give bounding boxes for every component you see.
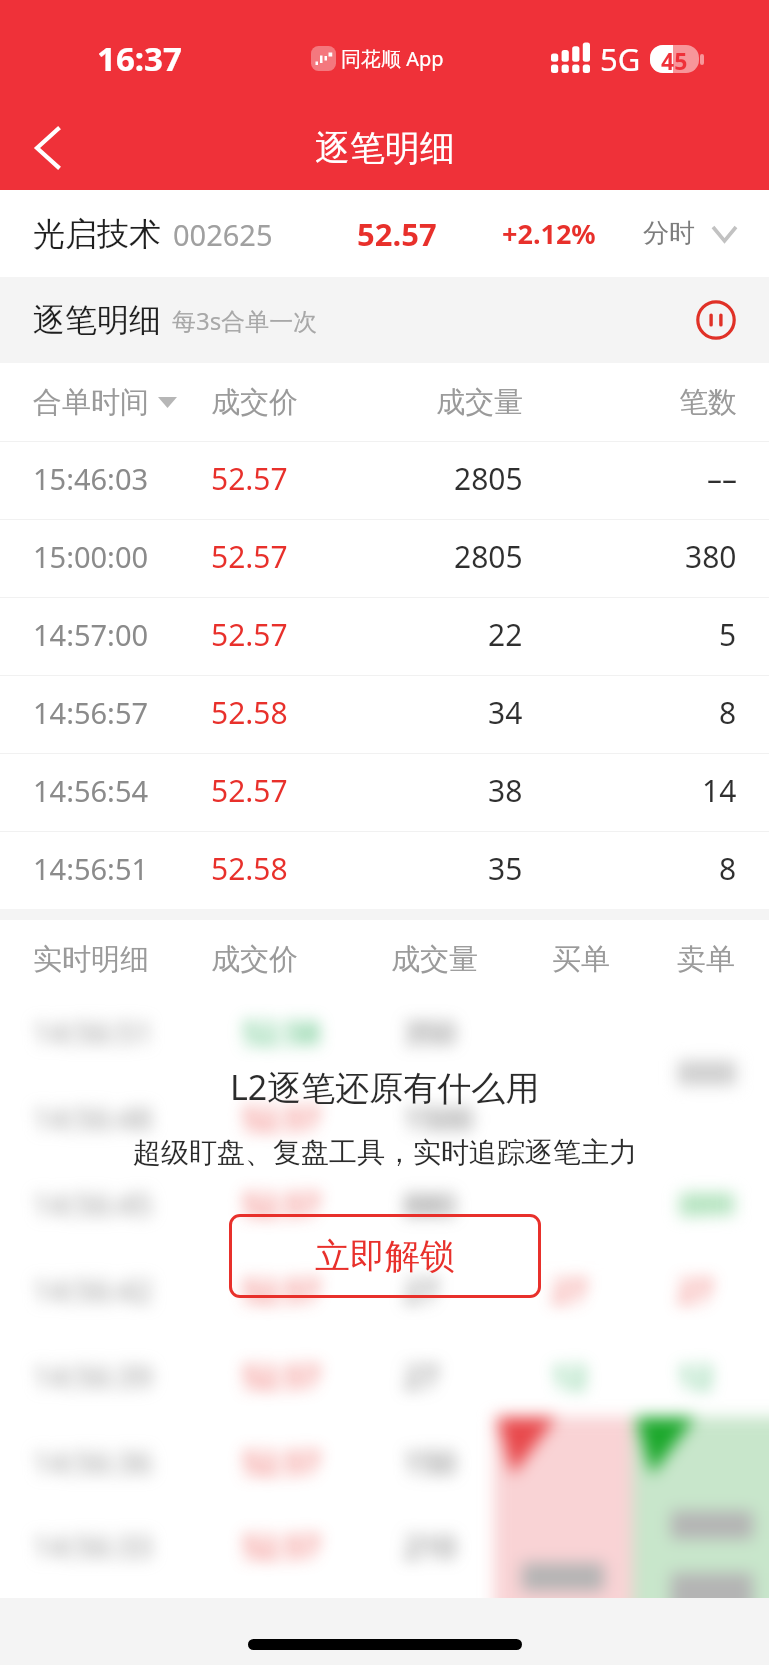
- staticText: 8: [719, 848, 737, 889]
- staticText: 1500: [404, 1098, 473, 1139]
- staticText: 14:56:48: [33, 1098, 153, 1139]
- staticText: 逐笔明细: [315, 126, 455, 170]
- button[interactable]: Pause: [696, 300, 736, 340]
- staticText: 002625: [173, 215, 273, 254]
- staticText: 52.57: [211, 458, 288, 499]
- staticText: 200: [552, 1098, 604, 1139]
- staticText: 成交价: [211, 384, 298, 421]
- staticText: 52.58: [243, 1012, 320, 1053]
- staticText: 52.57: [211, 536, 288, 577]
- staticText: 12: [678, 1356, 713, 1397]
- button[interactable]: 14:56:54: [0, 754, 769, 831]
- staticText: 52.57: [357, 213, 437, 255]
- staticText: 22: [488, 614, 523, 655]
- staticText: 成交量: [391, 941, 478, 978]
- staticText: 14:56:51: [33, 849, 149, 888]
- staticText: 14:56:45: [33, 1184, 153, 1225]
- staticText: 5: [719, 614, 737, 655]
- staticText: 35: [488, 848, 523, 889]
- staticText: 16:37: [97, 36, 182, 81]
- staticText: 34: [488, 692, 523, 733]
- staticText: 52.57: [243, 1184, 320, 1225]
- staticText: 52.58: [211, 692, 288, 733]
- staticText: 52.57: [243, 1270, 320, 1311]
- staticText: 380: [685, 536, 737, 577]
- staticText: 27: [404, 1356, 439, 1397]
- staticText: 27: [552, 1270, 587, 1311]
- staticText: L2逐笔还原有什么用: [230, 1064, 540, 1110]
- staticText: 880: [404, 1184, 456, 1225]
- staticText: 52.57: [243, 1098, 320, 1139]
- staticText: 45: [661, 45, 688, 73]
- staticText: 2805: [454, 536, 523, 577]
- staticText: 15:46:03: [33, 459, 149, 498]
- staticText: 52.57: [243, 1356, 320, 1397]
- staticText: 14:56:39: [33, 1356, 153, 1397]
- staticText: 立即解锁: [315, 1234, 455, 1278]
- staticText: 14:56:57: [33, 693, 149, 732]
- staticText: 14:56:36: [33, 1442, 153, 1483]
- staticText: 14:57:00: [33, 615, 149, 654]
- staticText: ––: [707, 458, 737, 499]
- staticText: 逐笔明细: [33, 300, 161, 340]
- button[interactable]: 14:57:00: [0, 598, 769, 675]
- staticText: 350: [404, 1012, 456, 1053]
- staticText: +2.12%: [502, 215, 596, 252]
- staticText: 12: [552, 1356, 587, 1397]
- staticText: 实时明细: [33, 941, 149, 978]
- button[interactable]: 15:46:03: [0, 442, 769, 519]
- button[interactable]: 14:56:57: [0, 676, 769, 753]
- staticText: 52.57: [211, 770, 288, 811]
- staticText: 52.58: [211, 848, 288, 889]
- staticText: 52.57: [243, 1442, 320, 1483]
- staticText: 14:56:33: [33, 1526, 153, 1567]
- staticText: 笔数: [679, 384, 737, 421]
- button[interactable]: 14:56:51: [0, 832, 769, 909]
- staticText: 87: [678, 1184, 713, 1225]
- button[interactable]: Back: [8, 109, 86, 187]
- staticText: 14:56:42: [33, 1270, 153, 1311]
- staticText: 每3s合单一次: [172, 304, 318, 337]
- button[interactable]: 立即解锁: [229, 1214, 541, 1298]
- staticText: 成交价: [211, 941, 298, 978]
- staticText: 买单: [552, 941, 610, 978]
- staticText: 5G: [600, 38, 641, 80]
- staticText: 14:56:51: [33, 1012, 153, 1053]
- staticText: 52.57: [211, 614, 288, 655]
- staticText: 150: [404, 1442, 456, 1483]
- button[interactable]: 合单时间: [33, 384, 177, 421]
- staticText: 超级盯盘、复盘工具，实时追踪逐笔主力: [133, 1135, 637, 1170]
- staticText: 52.57: [243, 1526, 320, 1567]
- staticText: 14:56:54: [33, 771, 149, 810]
- staticText: 同花顺 App: [341, 45, 444, 72]
- staticText: 38: [488, 770, 523, 811]
- staticText: 27: [404, 1270, 439, 1311]
- button[interactable]: 15:00:00: [0, 520, 769, 597]
- staticText: 成交量: [436, 384, 523, 421]
- button[interactable]: 分时: [633, 211, 742, 256]
- staticText: 14: [702, 770, 737, 811]
- staticText: 2805: [454, 458, 523, 499]
- staticText: 8: [719, 692, 737, 733]
- staticText: 210: [404, 1526, 456, 1567]
- staticText: 光启技术: [33, 214, 161, 254]
- staticText: 分时: [643, 217, 695, 250]
- staticText: 合单时间: [33, 384, 149, 421]
- staticText: 27: [678, 1270, 713, 1311]
- staticText: 15:00:00: [33, 537, 149, 576]
- staticText: 卖单: [677, 941, 735, 978]
